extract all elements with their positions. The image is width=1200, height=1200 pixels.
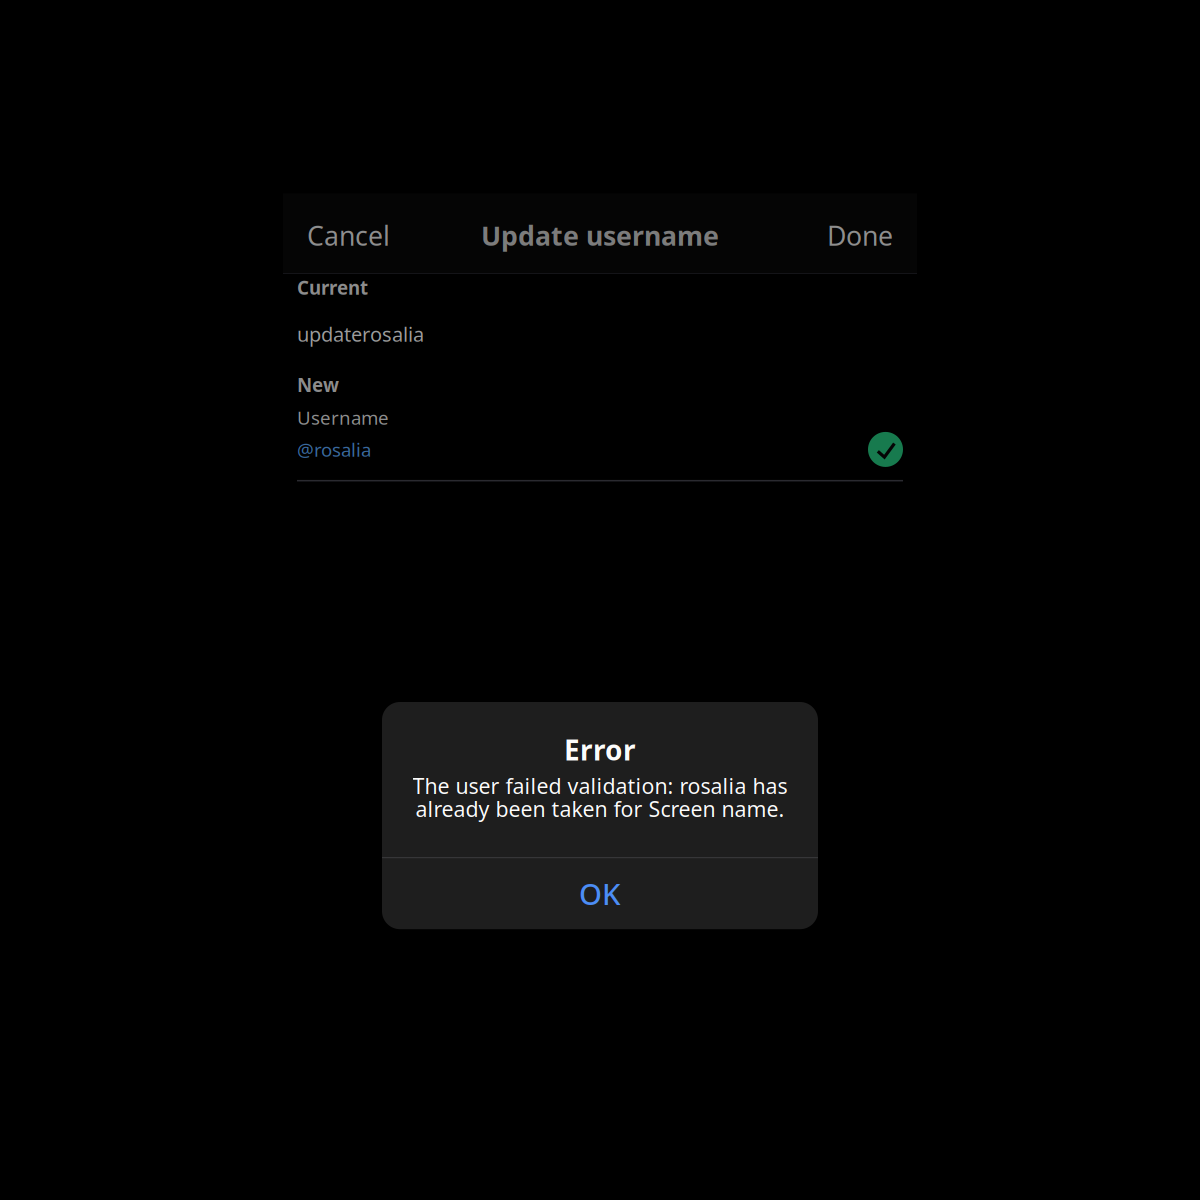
button[interactable]: OK xyxy=(382,858,818,929)
staticText: updaterosalia xyxy=(297,321,424,347)
staticText: Current xyxy=(297,275,368,300)
staticText: Cancel xyxy=(307,218,390,253)
button[interactable]: Done xyxy=(815,202,905,265)
staticText: Done xyxy=(827,218,893,253)
staticText: Error xyxy=(564,731,636,768)
button[interactable]: Cancel xyxy=(295,202,402,265)
staticText: @rosalia xyxy=(297,437,371,462)
staticText: Update username xyxy=(481,218,719,253)
staticText: Username xyxy=(297,405,389,430)
staticText: New xyxy=(297,372,339,397)
staticText: already been taken for Screen name. xyxy=(415,794,784,823)
staticText: OK xyxy=(579,874,621,913)
button[interactable]: Username xyxy=(297,397,903,481)
staticText: The user failed validation: rosalia has xyxy=(412,771,787,800)
